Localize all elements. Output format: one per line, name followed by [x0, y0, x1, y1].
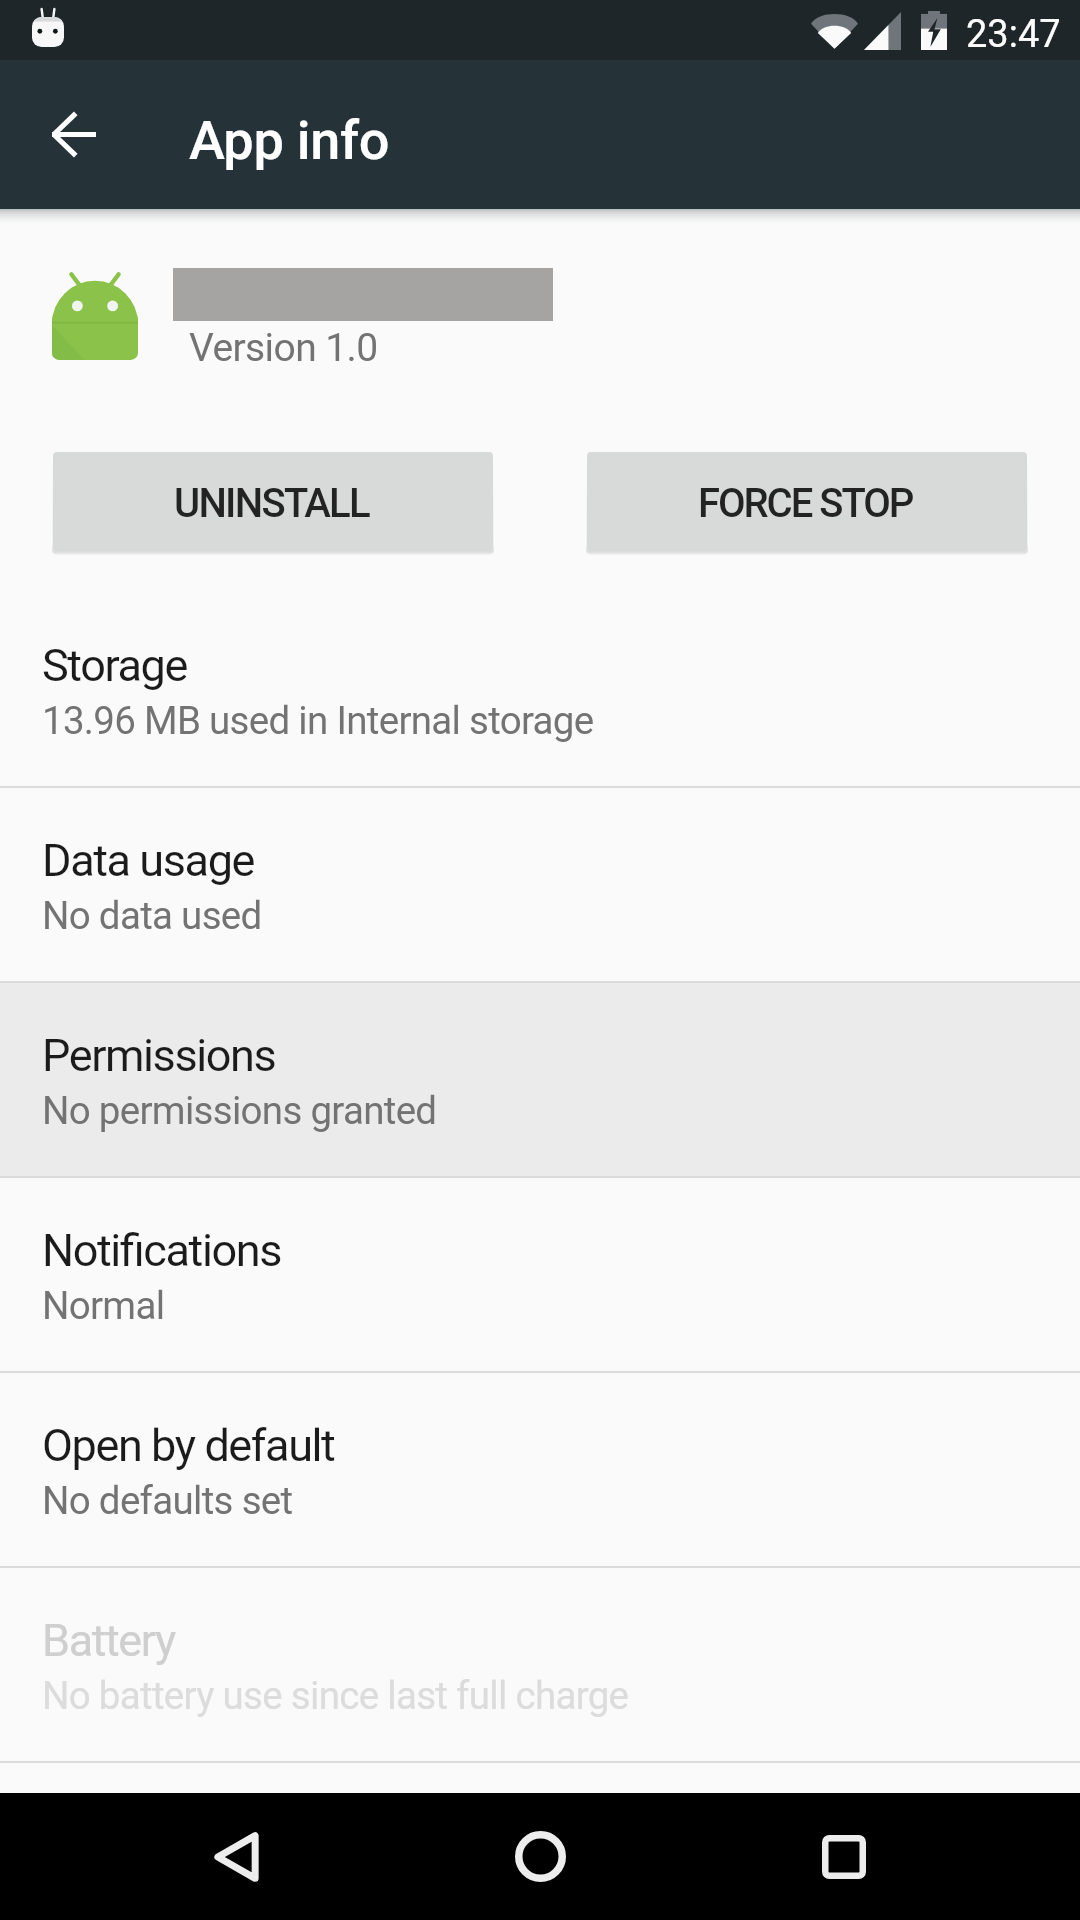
staticText: Version 1.0	[189, 325, 378, 371]
button[interactable]: Notifications	[0, 1178, 1080, 1371]
staticText: Battery	[42, 1614, 175, 1667]
staticText: FORCE STOP	[698, 480, 913, 527]
staticText: UNINSTALL	[174, 480, 369, 527]
staticText: Open by default	[42, 1419, 335, 1472]
button[interactable]: Back	[174, 1793, 298, 1920]
staticText: No battery use since last full charge	[42, 1673, 629, 1718]
button[interactable]: Open by default	[0, 1373, 1080, 1566]
button[interactable]: Navigate up	[0, 60, 147, 209]
button[interactable]: Permissions	[0, 983, 1080, 1176]
staticText: Data usage	[42, 834, 255, 887]
staticText: Permissions	[42, 1029, 276, 1082]
button[interactable]: Battery	[0, 1568, 1080, 1761]
button[interactable]: Storage	[0, 593, 1080, 786]
staticText: 13.96 MB used in Internal storage	[42, 698, 594, 743]
staticText: 23:47	[966, 12, 1061, 57]
staticText: Storage	[42, 639, 187, 692]
staticText: No permissions granted	[42, 1088, 437, 1133]
button[interactable]: Home	[478, 1793, 602, 1920]
staticText: App info	[189, 109, 390, 172]
button[interactable]: Data usage	[0, 788, 1080, 981]
staticText: Notifications	[42, 1224, 282, 1277]
staticText: No data used	[42, 893, 262, 938]
button[interactable]: FORCE STOP	[587, 452, 1027, 551]
staticText: No defaults set	[42, 1478, 293, 1523]
staticText: Normal	[42, 1283, 165, 1328]
button[interactable]: Recent apps	[782, 1793, 906, 1920]
button[interactable]: UNINSTALL	[53, 452, 493, 551]
